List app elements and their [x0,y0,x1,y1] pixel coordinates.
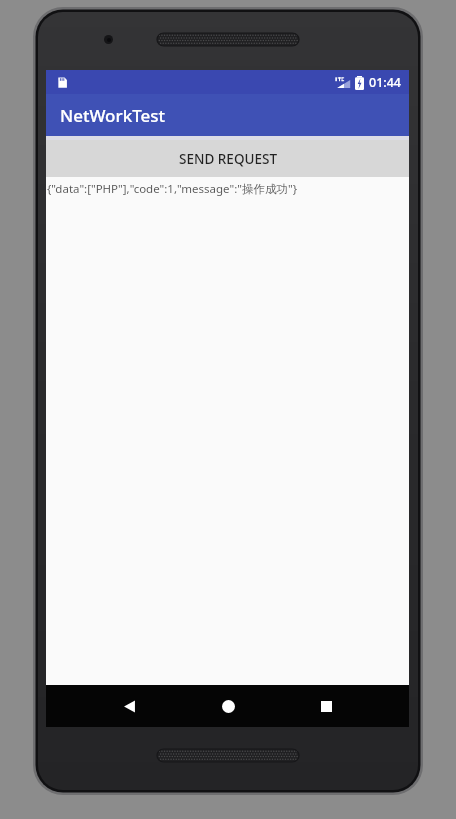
staticText: SEND REQUEST [179,150,277,168]
button[interactable]: Back [110,687,148,725]
button[interactable]: SEND REQUEST [46,140,409,177]
button[interactable]: Recent apps [307,687,345,725]
staticText: {"data":["PHP"],"code":1,"message":"操作成功… [47,181,298,197]
button[interactable]: Home [209,687,247,725]
staticText: 01:44 [369,74,402,91]
staticText: NetWorkTest [60,104,166,127]
